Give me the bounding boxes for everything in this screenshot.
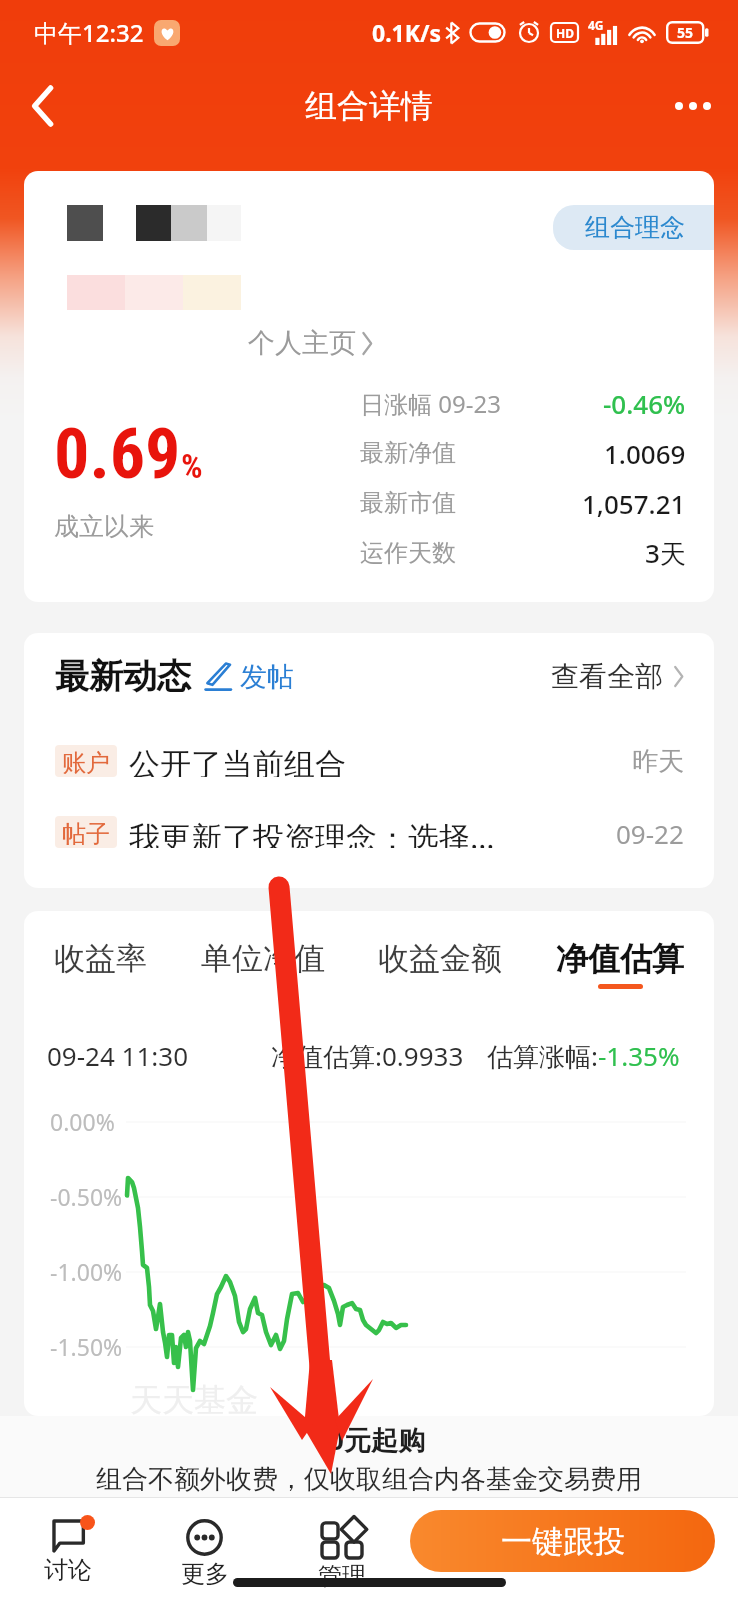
staticText: 中午12:32 xyxy=(34,16,144,49)
staticText: % xyxy=(181,446,203,486)
button[interactable]: 净值估算 xyxy=(556,939,684,989)
staticText: -1.50% xyxy=(50,1331,123,1362)
staticText: 09-22 xyxy=(616,816,684,848)
staticText: 净值估算:0.9933 xyxy=(271,1038,464,1074)
staticText: 10元起购 xyxy=(313,1421,425,1458)
button[interactable]: 组合理念 xyxy=(553,205,714,250)
staticText: 组合不额外收费，仅收取组合内各基金交易费用 xyxy=(96,1463,642,1496)
staticText: 公开了当前组合 xyxy=(129,745,346,777)
staticText: 账户 xyxy=(62,748,110,774)
staticText: 单位净值 xyxy=(201,939,325,978)
staticText: 查看全部 xyxy=(551,659,663,694)
button[interactable]: 单位净值 xyxy=(201,939,325,983)
button[interactable]: More options xyxy=(662,75,724,137)
staticText: 1,057.21 xyxy=(582,486,686,521)
staticText: 0.00% xyxy=(50,1106,115,1137)
staticText: 发帖 xyxy=(240,660,294,694)
staticText: 收益金额 xyxy=(378,939,502,978)
staticText: 帖子 xyxy=(62,819,110,845)
staticText: 09-24 11:30 xyxy=(47,1038,189,1073)
staticText: 天天基金 xyxy=(130,1380,258,1416)
staticText: 成立以来 xyxy=(54,511,154,542)
button[interactable]: 发帖 xyxy=(204,660,294,694)
button[interactable]: 个人主页 xyxy=(248,326,373,360)
staticText: 日涨幅 09-23 xyxy=(360,387,501,420)
staticText: -1.00% xyxy=(50,1256,123,1287)
staticText: 4G xyxy=(588,17,604,33)
staticText: 个人主页 xyxy=(248,326,356,360)
staticText: -1.35% xyxy=(598,1038,680,1073)
staticText: 一键跟投 xyxy=(501,1522,625,1561)
button[interactable]: 收益率 xyxy=(54,939,147,983)
staticText: 我更新了投资理念：选择… xyxy=(129,816,495,848)
button[interactable]: 收益金额 xyxy=(378,939,502,983)
staticText: 0.69 xyxy=(54,413,181,495)
button[interactable]: 查看全部 xyxy=(551,659,684,694)
button[interactable]: Back xyxy=(12,75,74,137)
staticText: 3天 xyxy=(645,535,686,571)
button[interactable]: 账户 xyxy=(55,745,684,777)
button[interactable]: 管理 xyxy=(273,1519,410,1591)
staticText: 55 xyxy=(677,23,694,42)
staticText: 运作天数 xyxy=(360,538,456,568)
button[interactable]: 帖子 xyxy=(55,816,684,848)
button[interactable]: 讨论 xyxy=(0,1519,136,1585)
staticText: -0.50% xyxy=(50,1181,123,1212)
staticText: 最新动态 xyxy=(55,655,191,698)
staticText: 昨天 xyxy=(632,745,684,777)
staticText: HD xyxy=(556,25,574,41)
staticText: 更多 xyxy=(181,1559,229,1589)
button[interactable]: 更多 xyxy=(136,1519,273,1589)
staticText: 组合详情 xyxy=(305,86,433,126)
staticText: -0.46% xyxy=(603,386,686,421)
staticText: 管理 xyxy=(318,1561,366,1591)
staticText: 收益率 xyxy=(54,939,147,978)
staticText: 0.1K/s xyxy=(372,17,442,48)
staticText: 最新市值 xyxy=(360,488,456,518)
staticText: 讨论 xyxy=(44,1555,92,1585)
button[interactable]: 一键跟投 xyxy=(410,1510,715,1572)
staticText: 净值估算 xyxy=(556,939,684,979)
staticText: 1.0069 xyxy=(604,436,686,471)
staticText: 最新净值 xyxy=(360,438,456,468)
staticText: 组合理念 xyxy=(585,212,685,243)
staticText: 估算涨幅: xyxy=(487,1038,598,1074)
